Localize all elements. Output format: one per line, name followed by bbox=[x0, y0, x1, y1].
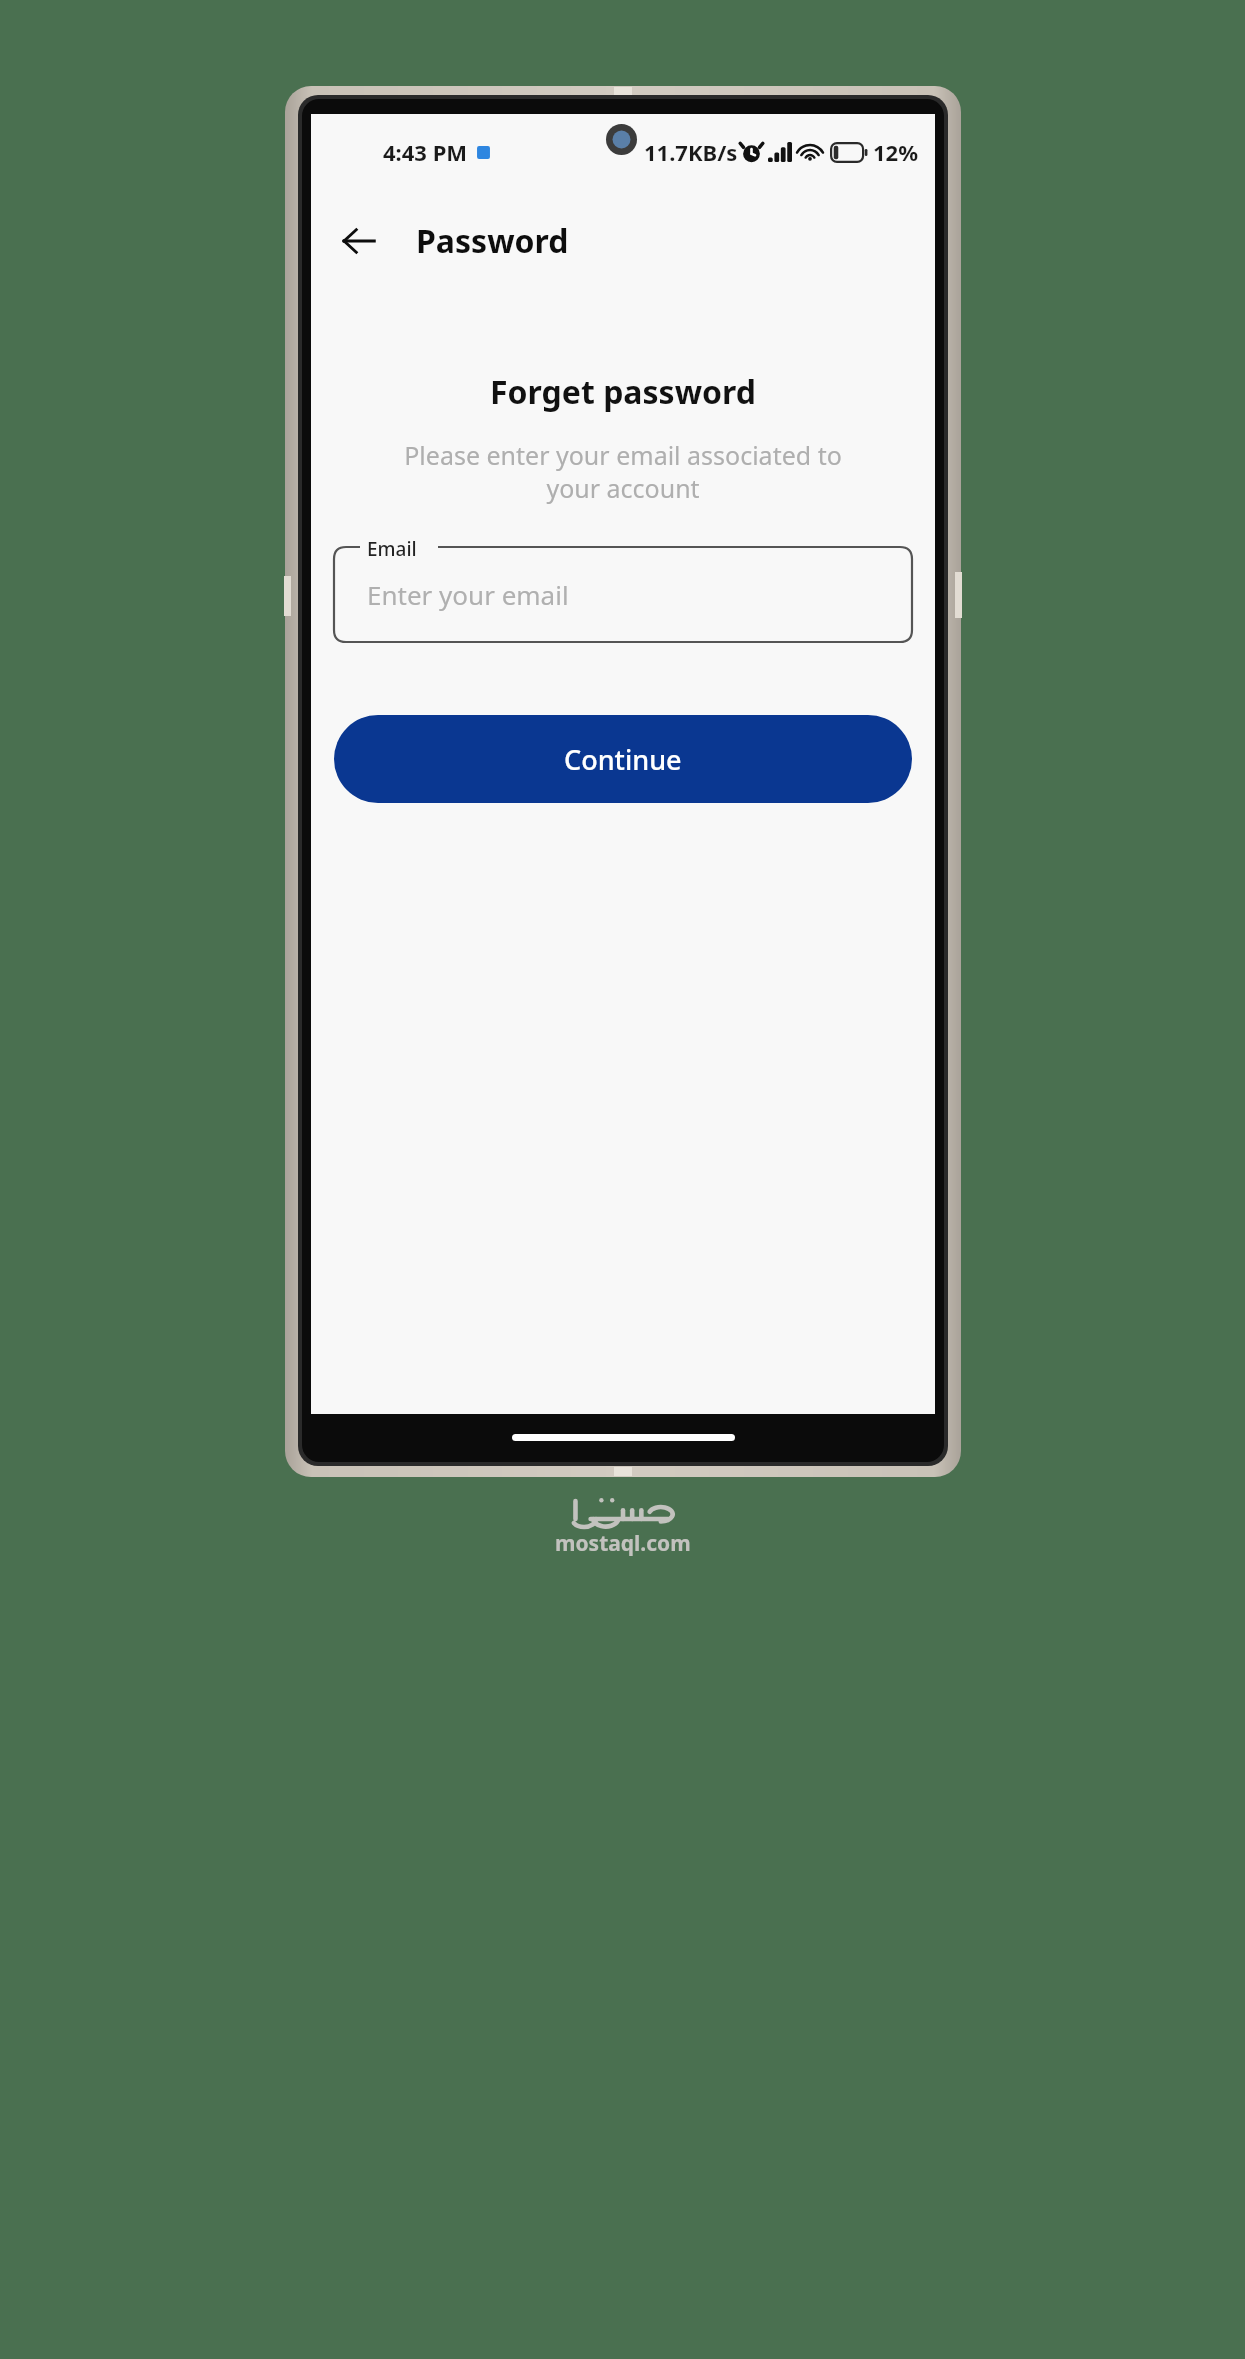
button[interactable]: Back bbox=[329, 211, 389, 271]
staticText: 11.7KB/s bbox=[644, 137, 738, 167]
staticText: 12% bbox=[873, 137, 919, 167]
button[interactable]: Continue bbox=[334, 715, 912, 803]
staticText: Continue bbox=[564, 741, 682, 778]
staticText: mostaql.com bbox=[555, 1529, 691, 1558]
staticText: Password bbox=[416, 219, 569, 263]
staticText: Enter your email bbox=[367, 577, 569, 612]
staticText: Email bbox=[367, 536, 417, 562]
staticText: 4:43 PM bbox=[383, 137, 468, 167]
staticText: Forget password bbox=[311, 370, 935, 414]
staticText: Please enter your email associated to yo… bbox=[331, 438, 915, 505]
